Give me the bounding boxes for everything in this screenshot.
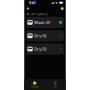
staticText: MY APPLIANCES (26, 12, 47, 16)
button[interactable]: Notifications (60, 7, 64, 10)
staticText: Dry 03 (34, 46, 46, 52)
staticText: Home (31, 85, 39, 88)
button[interactable]: Dry 03 (26, 43, 64, 55)
staticText: Dry 02 (34, 33, 46, 38)
staticText: 9:41 (29, 0, 36, 5)
button[interactable]: Me (45, 79, 66, 90)
staticText: Wash 01 (34, 20, 50, 25)
button[interactable]: Home (24, 79, 45, 90)
button[interactable]: Wash 01 (26, 17, 64, 28)
button[interactable]: Dry 02 (26, 30, 64, 41)
button[interactable]: Account (26, 7, 30, 10)
staticText: Me (53, 85, 57, 88)
